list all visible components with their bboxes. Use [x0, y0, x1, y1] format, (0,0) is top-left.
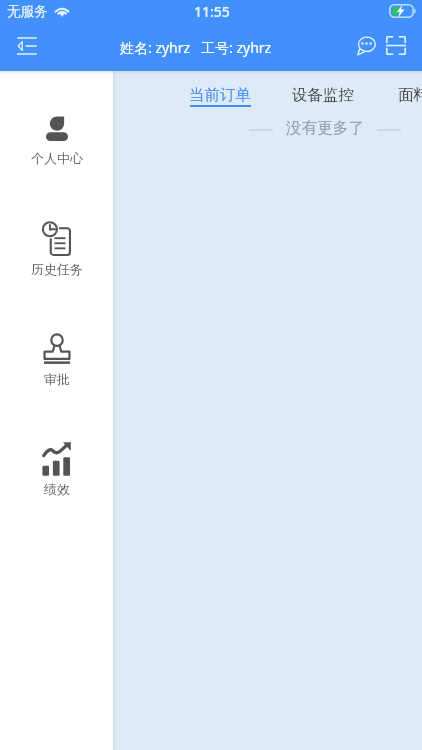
- button[interactable]: 个人中心: [0, 105, 113, 172]
- staticText: 历史任务: [31, 261, 83, 277]
- button[interactable]: 绩效: [0, 430, 113, 503]
- button[interactable]: 审批: [0, 322, 113, 393]
- button[interactable]: Scan: [380, 29, 412, 61]
- staticText: 无服务: [7, 3, 48, 20]
- staticText: 姓名: zyhrz 工号: zyhrz: [120, 38, 272, 57]
- button[interactable]: 设备监控: [292, 85, 354, 105]
- button[interactable]: 面料: [398, 85, 422, 105]
- staticText: 绩效: [44, 481, 70, 497]
- staticText: 面料: [398, 85, 422, 104]
- staticText: 没有更多了: [286, 118, 364, 138]
- staticText: 审批: [44, 371, 70, 387]
- button[interactable]: 当前订单: [189, 85, 251, 107]
- button[interactable]: 历史任务: [0, 209, 113, 283]
- button[interactable]: Menu: [5, 28, 49, 70]
- staticText: 当前订单: [189, 85, 251, 104]
- staticText: 个人中心: [31, 150, 83, 166]
- staticText: 设备监控: [292, 85, 354, 104]
- staticText: 11:55: [194, 2, 230, 21]
- button[interactable]: Messages: [350, 29, 382, 61]
